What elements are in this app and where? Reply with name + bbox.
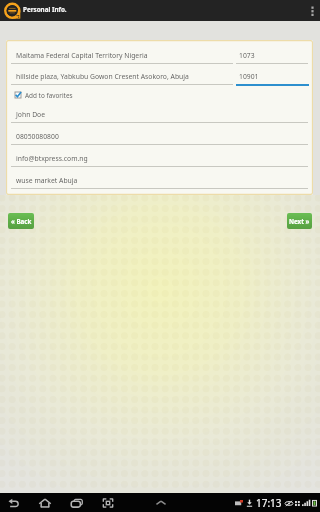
- button[interactable]: wuse market Abuja: [6, 166, 313, 189]
- button[interactable]: 08050080800: [6, 122, 313, 145]
- staticText: hillside plaza, Yabkubu Gowon Cresent As…: [16, 72, 189, 81]
- button[interactable]: More options: [304, 0, 320, 21]
- staticText: 17:13: [256, 496, 282, 510]
- staticText: 08050080800: [16, 132, 59, 141]
- button[interactable]: 10901: [235, 63, 313, 86]
- staticText: 10901: [239, 72, 259, 81]
- staticText: Next »: [289, 217, 310, 225]
- button[interactable]: John Doe: [6, 106, 313, 123]
- button[interactable]: Screenshot: [94, 493, 121, 512]
- staticText: John Doe: [16, 110, 46, 119]
- staticText: wuse market Abuja: [16, 176, 78, 185]
- staticText: Add to favorites: [25, 91, 73, 100]
- staticText: « Back: [11, 217, 32, 225]
- button[interactable]: Home: [31, 493, 58, 512]
- button[interactable]: Expand: [147, 493, 174, 512]
- button[interactable]: « Back: [8, 213, 34, 229]
- button[interactable]: Back: [0, 493, 27, 512]
- button[interactable]: Add to favorites: [6, 86, 313, 104]
- button[interactable]: Maitama Federal Capital Territory Nigeri…: [6, 40, 233, 64]
- button[interactable]: hillside plaza, Yabkubu Gowon Cresent As…: [6, 63, 233, 85]
- button[interactable]: Next »: [287, 213, 312, 229]
- staticText: Maitama Federal Capital Territory Nigeri…: [16, 51, 148, 60]
- staticText: 1073: [239, 51, 255, 60]
- button[interactable]: Recent apps: [63, 493, 90, 512]
- staticText: info@btxpress.com.ng: [16, 154, 88, 163]
- button[interactable]: 1073: [235, 40, 313, 65]
- staticText: Personal Info.: [23, 5, 67, 14]
- button[interactable]: info@btxpress.com.ng: [6, 144, 313, 167]
